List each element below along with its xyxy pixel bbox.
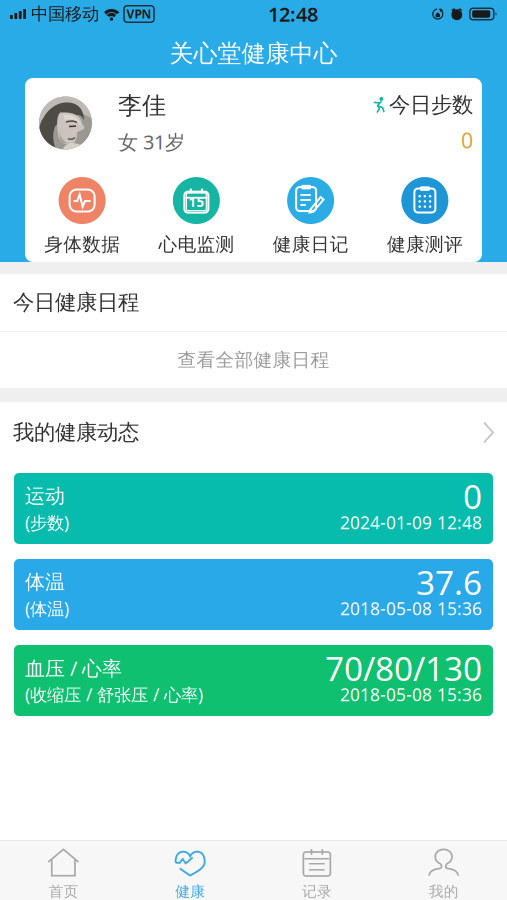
staticText: 记录 bbox=[302, 882, 332, 900]
button[interactable]: 健康测评 bbox=[368, 177, 482, 256]
button[interactable]: 15 bbox=[139, 177, 253, 256]
staticText: 血压 / 心率 bbox=[25, 655, 122, 681]
staticText: (步数) bbox=[25, 511, 69, 534]
staticText: 12:48 bbox=[268, 1, 318, 27]
staticText: 70/80/130 bbox=[325, 646, 482, 690]
button[interactable]: 运动 bbox=[14, 473, 493, 544]
button[interactable]: 我的 bbox=[380, 840, 507, 900]
staticText: VPN bbox=[126, 6, 151, 22]
staticText: 2024-01-09 12:48 bbox=[340, 511, 482, 534]
staticText: 健康测评 bbox=[387, 233, 463, 256]
staticText: 健康日记 bbox=[273, 233, 349, 256]
staticText: 心电监测 bbox=[158, 233, 234, 256]
staticText: 健康 bbox=[175, 882, 205, 900]
staticText: 今日步数 bbox=[389, 92, 473, 118]
button[interactable]: 记录 bbox=[253, 840, 380, 900]
staticText: 我的健康动态 bbox=[13, 419, 139, 446]
button[interactable]: 我的健康动态 bbox=[0, 402, 507, 463]
staticText: 李佳 bbox=[118, 91, 166, 120]
staticText: 中国移动 bbox=[31, 3, 99, 25]
button[interactable]: 身体数据 bbox=[25, 177, 139, 256]
staticText: 今日健康日程 bbox=[13, 289, 139, 316]
button[interactable]: 体温 bbox=[14, 559, 493, 630]
staticText: 女 31岁 bbox=[118, 128, 185, 155]
button[interactable]: 血压 / 心率 bbox=[14, 645, 493, 716]
button[interactable]: 今日健康日程 bbox=[0, 274, 507, 331]
staticText: 15 bbox=[188, 193, 204, 211]
staticText: 体温 bbox=[25, 570, 65, 594]
button[interactable]: 健康日记 bbox=[253, 177, 368, 256]
staticText: 2018-05-08 15:36 bbox=[340, 683, 482, 706]
staticText: 0 bbox=[461, 126, 473, 154]
staticText: 2018-05-08 15:36 bbox=[340, 597, 482, 620]
staticText: 运动 bbox=[25, 484, 65, 508]
staticText: 我的 bbox=[429, 882, 459, 900]
staticText: 查看全部健康日程 bbox=[177, 348, 329, 371]
staticText: (体温) bbox=[25, 597, 69, 620]
button[interactable]: 关心堂健康中心 bbox=[0, 29, 507, 78]
staticText: 0 bbox=[463, 474, 482, 518]
staticText: (收缩压 / 舒张压 / 心率) bbox=[25, 683, 203, 706]
staticText: 关心堂健康中心 bbox=[169, 39, 337, 68]
staticText: 身体数据 bbox=[44, 233, 120, 256]
button[interactable]: 健康 bbox=[127, 840, 254, 900]
button[interactable]: 查看全部健康日程 bbox=[0, 332, 507, 388]
button[interactable]: 首页 bbox=[0, 840, 127, 900]
staticText: 首页 bbox=[48, 882, 78, 900]
staticText: 37.6 bbox=[416, 560, 482, 604]
